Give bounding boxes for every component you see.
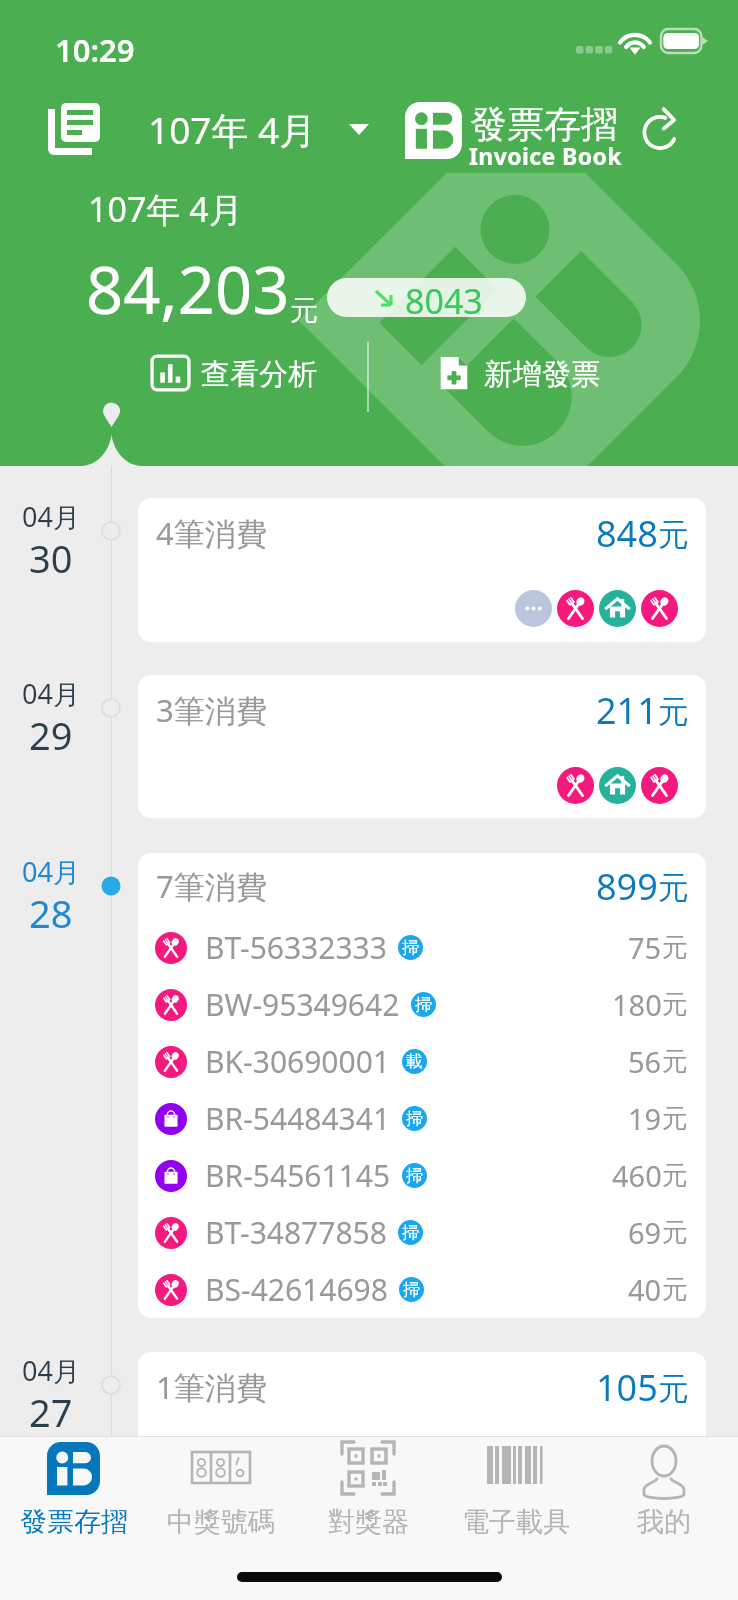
staticText: 105 bbox=[596, 1363, 658, 1412]
staticText: 元 bbox=[658, 692, 689, 731]
button[interactable]: 電子載具 bbox=[442, 1436, 590, 1600]
staticText: Invoice Book bbox=[469, 140, 622, 171]
button[interactable]: 對獎器 bbox=[294, 1436, 442, 1600]
staticText: 899 bbox=[596, 862, 658, 911]
button[interactable]: 中獎號碼 bbox=[147, 1436, 294, 1600]
staticText: 掃 bbox=[406, 1108, 423, 1129]
staticText: BR-54561145 bbox=[205, 1155, 391, 1196]
staticText: 元 bbox=[658, 1369, 689, 1408]
button[interactable]: 1筆消費 bbox=[138, 1352, 706, 1502]
staticText: 75 bbox=[628, 928, 662, 967]
button[interactable]: Refresh bbox=[638, 105, 684, 151]
staticText: 8043 bbox=[405, 278, 483, 317]
staticText: BK-30690001 bbox=[205, 1041, 391, 1082]
staticText: BR-54484341 bbox=[205, 1098, 391, 1139]
button[interactable]: BK-30690001 bbox=[155, 1033, 688, 1090]
staticText: 40 bbox=[628, 1270, 662, 1309]
staticText: 元 bbox=[662, 1045, 688, 1078]
staticText: 元 bbox=[662, 931, 688, 964]
staticText: 中獎號碼 bbox=[167, 1505, 275, 1539]
button[interactable]: BR-54561145 bbox=[155, 1147, 688, 1204]
staticText: 掃 bbox=[406, 1165, 423, 1186]
staticText: 掃 bbox=[402, 937, 419, 958]
staticText: 27 bbox=[29, 1386, 73, 1438]
staticText: 69 bbox=[628, 1213, 662, 1252]
staticText: 元 bbox=[658, 868, 689, 907]
staticText: 發票存摺 bbox=[470, 101, 618, 148]
staticText: 元 bbox=[662, 1159, 688, 1192]
staticText: 211 bbox=[596, 686, 658, 735]
staticText: 7筆消費 bbox=[156, 865, 267, 907]
staticText: 180 bbox=[612, 985, 662, 1024]
staticText: 460 bbox=[612, 1156, 662, 1195]
button[interactable]: 新增發票 bbox=[415, 336, 624, 412]
staticText: BT-56332333 bbox=[205, 927, 387, 968]
staticText: 28 bbox=[29, 887, 73, 939]
button[interactable]: BT-34877858 bbox=[155, 1204, 688, 1261]
staticText: 107年 4月 bbox=[148, 104, 317, 155]
button[interactable]: Invoice list bbox=[48, 103, 100, 155]
staticText: 載 bbox=[406, 1051, 423, 1072]
button[interactable]: 4筆消費 bbox=[138, 498, 706, 642]
staticText: 29 bbox=[29, 709, 73, 761]
staticText: 56 bbox=[628, 1042, 662, 1081]
staticText: 元 bbox=[662, 1216, 688, 1249]
staticText: 電子載具 bbox=[462, 1505, 570, 1539]
staticText: 我的 bbox=[637, 1505, 691, 1539]
staticText: 掃 bbox=[403, 1279, 420, 1300]
staticText: 30 bbox=[29, 532, 73, 584]
staticText: 1筆消費 bbox=[156, 1366, 267, 1408]
staticText: 掃 bbox=[402, 1222, 419, 1243]
button[interactable]: BR-54484341 bbox=[155, 1090, 688, 1147]
button[interactable]: 發票存摺 bbox=[0, 1436, 147, 1600]
button[interactable]: 查看分析 bbox=[130, 336, 341, 412]
staticText: 對獎器 bbox=[328, 1505, 409, 1539]
staticText: BT-34877858 bbox=[205, 1212, 387, 1253]
button[interactable]: 我的 bbox=[590, 1436, 738, 1600]
staticText: 元 bbox=[662, 988, 688, 1021]
staticText: 3筆消費 bbox=[156, 689, 267, 731]
staticText: 10:29 bbox=[55, 29, 135, 71]
staticText: 84,203 bbox=[86, 245, 290, 334]
staticText: 元 bbox=[290, 293, 318, 328]
staticText: 元 bbox=[662, 1102, 688, 1135]
button[interactable]: 107年 4月 bbox=[148, 96, 369, 162]
staticText: 元 bbox=[662, 1273, 688, 1306]
staticText: 04月 bbox=[22, 1352, 80, 1389]
staticText: BS-42614698 bbox=[205, 1269, 388, 1310]
staticText: BW-95349642 bbox=[205, 984, 400, 1025]
button[interactable]: BW-95349642 bbox=[155, 976, 688, 1033]
staticText: 19 bbox=[628, 1099, 662, 1138]
staticText: 04月 bbox=[22, 853, 80, 890]
staticText: 發票存摺 bbox=[20, 1505, 128, 1539]
staticText: 元 bbox=[658, 515, 689, 554]
staticText: 掃 bbox=[415, 994, 432, 1015]
staticText: 107年 4月 bbox=[88, 186, 243, 232]
button[interactable]: 3筆消費 bbox=[138, 675, 706, 818]
staticText: 04月 bbox=[22, 675, 80, 712]
button[interactable]: BS-42614698 bbox=[155, 1261, 688, 1318]
button[interactable]: 8043 bbox=[327, 278, 526, 317]
staticText: 04月 bbox=[22, 498, 80, 535]
staticText: 4筆消費 bbox=[156, 512, 267, 554]
staticText: 查看分析 bbox=[201, 356, 317, 393]
staticText: 848 bbox=[596, 509, 658, 558]
button[interactable]: BT-56332333 bbox=[155, 919, 688, 976]
staticText: 新增發票 bbox=[484, 356, 600, 393]
button[interactable]: 7筆消費 bbox=[138, 853, 706, 1318]
